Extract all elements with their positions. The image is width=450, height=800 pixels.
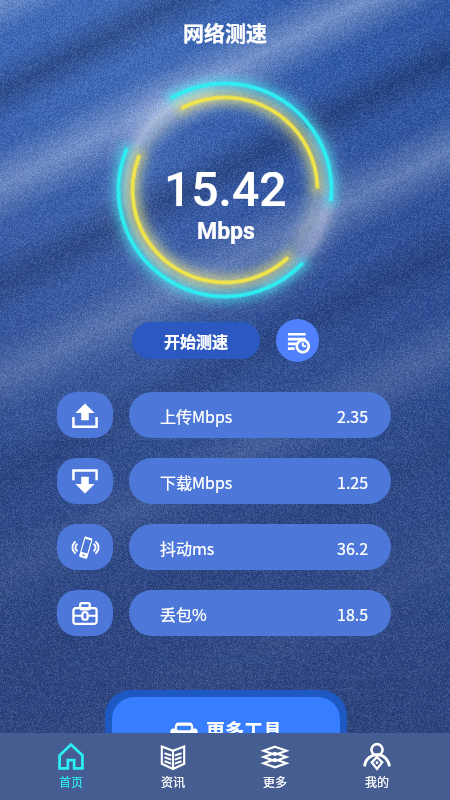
staticText: 抖动ms [160, 536, 215, 559]
staticText: 18.5 [337, 602, 369, 625]
staticText: Mbps [197, 218, 255, 245]
button[interactable]: 抖动ms [129, 524, 391, 570]
staticText: 首页 [59, 773, 84, 790]
button[interactable]: 上传Mbps [129, 392, 391, 438]
staticText: 15.42 [164, 161, 287, 217]
staticText: 网络测速 [183, 17, 267, 47]
staticText: 2.35 [337, 404, 369, 427]
staticText: 更多 [263, 773, 288, 790]
button[interactable]: 我的 [326, 733, 428, 800]
button[interactable]: 丢包% [129, 590, 391, 636]
staticText: 更多工具 [206, 716, 283, 740]
button[interactable]: 下载Mbps [129, 458, 391, 504]
staticText: 资讯 [161, 773, 186, 790]
button[interactable]: 测速记录 [276, 319, 319, 362]
button[interactable]: 开始测速 [132, 322, 260, 359]
button[interactable]: 丢包% [57, 590, 113, 636]
staticText: 下载Mbps [160, 470, 233, 493]
staticText: 1.25 [337, 470, 369, 493]
button[interactable]: 更多 [224, 733, 326, 800]
button[interactable]: 下载Mbps [57, 458, 113, 504]
button[interactable]: 首页 [20, 733, 122, 800]
staticText: 上传Mbps [160, 404, 233, 427]
staticText: 丢包% [160, 602, 207, 625]
button[interactable]: 抖动ms [57, 524, 113, 570]
staticText: 开始测速 [164, 329, 229, 352]
staticText: 36.2 [337, 536, 369, 559]
button[interactable]: 上传Mbps [57, 392, 113, 438]
staticText: 我的 [365, 773, 390, 790]
button[interactable]: 资讯 [122, 733, 224, 800]
button[interactable]: 更多工具 [112, 697, 340, 740]
